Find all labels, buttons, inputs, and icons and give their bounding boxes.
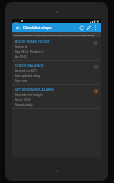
staticText: Reminder for tonight: [15, 93, 43, 97]
staticText: Arr 09:02: [15, 55, 27, 59]
button[interactable]: Scan: [92, 63, 99, 70]
button[interactable]: Navigate up: [14, 24, 21, 31]
button[interactable]: Camera: [92, 39, 99, 46]
button[interactable]: SET REMINDER ALARM: [12, 85, 101, 108]
button[interactable]: Alarm: [92, 87, 99, 94]
staticText: 9:41: [14, 20, 19, 23]
staticText: Account no 4471: [15, 69, 37, 73]
staticText: SET REMINDER ALARM: [15, 87, 54, 92]
button[interactable]: More options: [92, 24, 99, 31]
staticText: CHECK BALANCE: [15, 63, 44, 68]
staticText: Dep 08:14 Platform 3: [15, 50, 44, 54]
button[interactable]: Refresh: [78, 24, 85, 31]
button[interactable]: CHECK BALANCE: [12, 61, 101, 84]
button[interactable]: BOOK TRAIN TICKET: [12, 37, 101, 60]
staticText: Repeats daily: [15, 103, 33, 107]
staticText: Last updated today: [15, 74, 41, 78]
staticText: BOOK TRAIN TICKET: [15, 39, 50, 44]
staticText: Station A: [15, 45, 27, 49]
staticText: Select a method to mark each checklist s…: [14, 33, 95, 36]
staticText: Set at 19:30: [15, 98, 31, 102]
button[interactable]: Expand: [85, 24, 92, 31]
staticText: Sync now: [15, 79, 28, 83]
staticText: Checklist steps: [23, 25, 52, 30]
